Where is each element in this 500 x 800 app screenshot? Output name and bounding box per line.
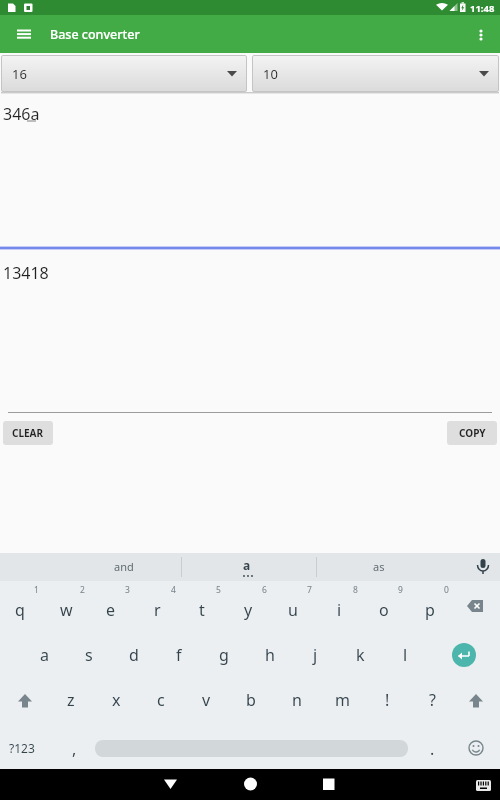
staticText: . bbox=[430, 738, 435, 760]
button[interactable] bbox=[464, 690, 488, 712]
staticText: y bbox=[244, 599, 253, 621]
button[interactable]: 10 bbox=[252, 55, 499, 92]
button[interactable]: a bbox=[227, 553, 267, 577]
button[interactable]: z bbox=[51, 688, 91, 712]
button[interactable] bbox=[472, 555, 494, 579]
button[interactable]: i bbox=[319, 598, 359, 622]
staticText: x bbox=[112, 689, 121, 711]
staticText: e bbox=[106, 599, 116, 621]
button[interactable]: b bbox=[231, 688, 271, 712]
button[interactable]: , bbox=[54, 737, 94, 761]
button[interactable]: o bbox=[364, 598, 404, 622]
button[interactable]: COPY bbox=[447, 421, 497, 445]
staticText: COPY bbox=[459, 426, 486, 440]
button[interactable]: r bbox=[137, 598, 177, 622]
staticText: t bbox=[199, 599, 205, 621]
staticText: q bbox=[15, 599, 25, 621]
staticText: 16 bbox=[12, 65, 27, 83]
button[interactable]: f bbox=[159, 643, 199, 667]
button[interactable] bbox=[238, 772, 263, 797]
staticText: l bbox=[403, 644, 408, 666]
button[interactable] bbox=[452, 643, 476, 667]
staticText: z bbox=[67, 689, 75, 711]
button[interactable] bbox=[13, 690, 37, 712]
staticText: Base converter bbox=[50, 26, 140, 43]
button[interactable]: CLEAR bbox=[3, 421, 53, 445]
button[interactable]: n bbox=[277, 688, 317, 712]
staticText: m bbox=[335, 689, 350, 711]
staticText: ? bbox=[429, 689, 436, 711]
staticText: i bbox=[337, 599, 342, 621]
staticText: 2 bbox=[80, 584, 85, 596]
staticText: a bbox=[40, 644, 49, 666]
button[interactable]: p bbox=[410, 598, 450, 622]
staticText: and bbox=[114, 559, 134, 574]
staticText: 8 bbox=[353, 584, 358, 596]
staticText: 1 bbox=[34, 584, 39, 596]
button[interactable]: d bbox=[114, 643, 154, 667]
button[interactable]: as bbox=[359, 554, 399, 578]
staticText: 0 bbox=[444, 584, 449, 596]
staticText: a bbox=[243, 557, 251, 573]
staticText: v bbox=[202, 689, 211, 711]
staticText: j bbox=[313, 644, 318, 666]
staticText: r bbox=[154, 599, 161, 621]
button[interactable]: y bbox=[228, 598, 268, 622]
button[interactable]: . bbox=[412, 737, 452, 761]
staticText: 11:48 bbox=[470, 2, 495, 15]
staticText: d bbox=[129, 644, 139, 666]
staticText: c bbox=[157, 689, 165, 711]
staticText: k bbox=[356, 644, 365, 666]
staticText: 4 bbox=[171, 584, 176, 596]
staticText: s bbox=[85, 644, 93, 666]
button[interactable]: e bbox=[91, 598, 131, 622]
staticText: 10 bbox=[263, 65, 278, 83]
staticText: 9 bbox=[398, 584, 403, 596]
button[interactable]: 16 bbox=[1, 55, 247, 92]
button[interactable] bbox=[13, 24, 35, 46]
staticText: h bbox=[265, 644, 275, 666]
button[interactable] bbox=[470, 24, 492, 46]
button[interactable]: ?123 bbox=[2, 736, 42, 760]
staticText: n bbox=[292, 689, 302, 711]
button[interactable]: j bbox=[295, 643, 335, 667]
button[interactable]: c bbox=[141, 688, 181, 712]
button[interactable] bbox=[464, 596, 488, 616]
button[interactable] bbox=[316, 772, 341, 797]
staticText: 5 bbox=[216, 584, 221, 596]
button[interactable]: s bbox=[69, 643, 109, 667]
button[interactable]: k bbox=[340, 643, 380, 667]
staticText: as bbox=[373, 559, 385, 574]
button[interactable]: v bbox=[186, 688, 226, 712]
button[interactable]: u bbox=[273, 598, 313, 622]
staticText: 13418 bbox=[3, 262, 49, 283]
staticText: 6 bbox=[262, 584, 267, 596]
staticText: CLEAR bbox=[12, 426, 44, 440]
button[interactable]: and bbox=[104, 554, 144, 578]
button[interactable]: h bbox=[250, 643, 290, 667]
staticText: 7 bbox=[307, 584, 312, 596]
button[interactable]: w bbox=[46, 598, 86, 622]
button[interactable] bbox=[465, 737, 487, 759]
staticText: u bbox=[288, 599, 298, 621]
button[interactable]: a bbox=[24, 643, 64, 667]
staticText: , bbox=[72, 738, 77, 760]
staticText: o bbox=[379, 599, 389, 621]
button[interactable]: ! bbox=[367, 688, 407, 712]
button[interactable]: g bbox=[204, 643, 244, 667]
button[interactable]: x bbox=[96, 688, 136, 712]
button[interactable]: m bbox=[322, 688, 362, 712]
button[interactable] bbox=[474, 778, 494, 794]
button[interactable] bbox=[158, 772, 183, 797]
staticText: 346a bbox=[3, 103, 40, 124]
staticText: w bbox=[60, 599, 73, 621]
staticText: 3 bbox=[125, 584, 130, 596]
staticText: p bbox=[425, 599, 435, 621]
button[interactable]: ? bbox=[412, 688, 452, 712]
button[interactable]: q bbox=[0, 598, 40, 622]
staticText: b bbox=[246, 689, 256, 711]
button[interactable]: t bbox=[182, 598, 222, 622]
staticText: f bbox=[176, 644, 182, 666]
button[interactable]: l bbox=[385, 643, 425, 667]
